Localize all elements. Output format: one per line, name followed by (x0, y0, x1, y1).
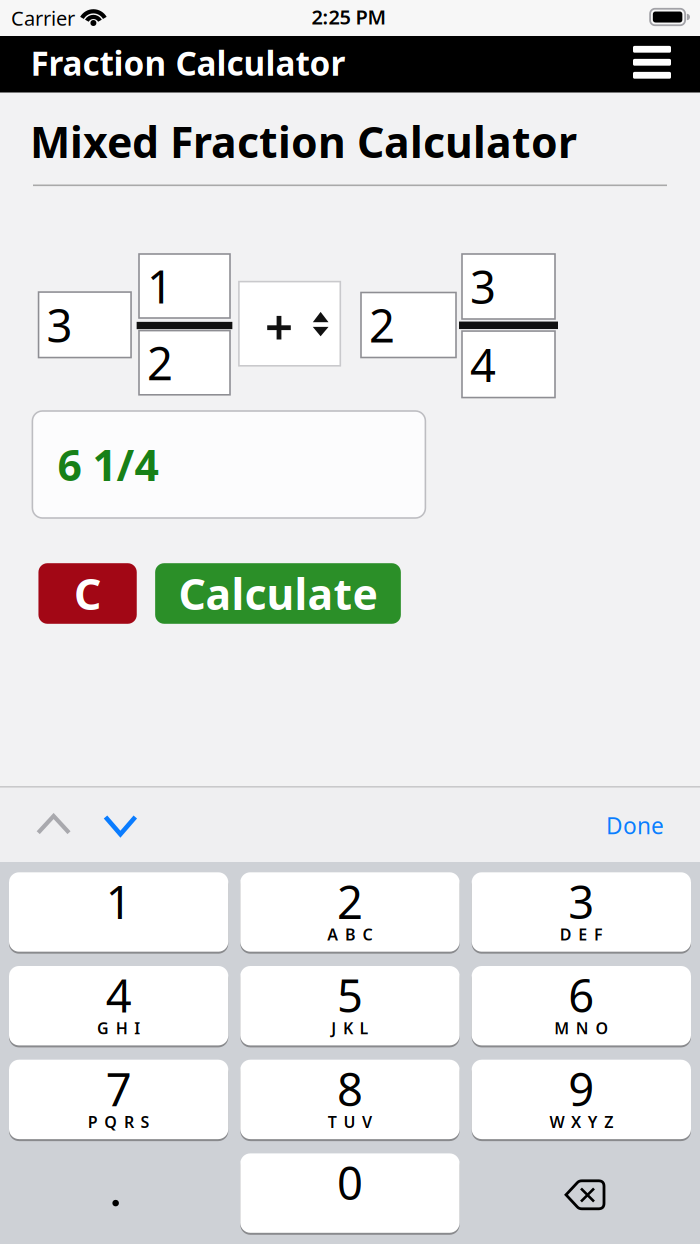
staticText: C (74, 565, 101, 622)
staticText: 5 (337, 965, 363, 1025)
staticText: 1 (147, 256, 173, 316)
button[interactable]: 4 (9, 966, 228, 1045)
staticText: M N O (554, 1017, 608, 1039)
staticText: 6 (568, 965, 594, 1025)
staticText: 4 (106, 965, 132, 1025)
button[interactable]: 3 (38, 292, 131, 358)
button[interactable]: Done (606, 810, 664, 840)
staticText: P Q R S (88, 1111, 150, 1132)
staticText: T U V (328, 1111, 372, 1132)
staticText: Mixed Fraction Calculator (30, 113, 577, 170)
button[interactable]: 5 (240, 966, 460, 1045)
staticText: 3 (46, 295, 72, 355)
button[interactable]: 3 (462, 254, 555, 319)
button[interactable] (103, 814, 138, 836)
button[interactable]: 4 (462, 331, 555, 398)
staticText: Carrier (11, 5, 75, 31)
button[interactable]: 6 (472, 966, 691, 1045)
staticText: 6 1/4 (57, 436, 158, 493)
button[interactable]: 3 (472, 872, 691, 952)
button[interactable]: 9 (472, 1060, 691, 1139)
button[interactable]: 0 (240, 1153, 460, 1233)
button[interactable]: 2 (139, 331, 230, 395)
staticText: A B C (327, 924, 373, 945)
staticText: 7 (106, 1059, 132, 1119)
staticText: 2 (147, 333, 173, 393)
staticText: 0 (337, 1152, 363, 1212)
staticText: W X Y Z (549, 1111, 613, 1132)
button[interactable]: C (38, 563, 137, 624)
button[interactable]: 2 (361, 292, 456, 357)
staticText: Calculate (178, 565, 377, 622)
button[interactable] (239, 282, 340, 366)
staticText: J K L (331, 1017, 369, 1039)
staticText: Done (606, 810, 664, 840)
button[interactable] (9, 1153, 228, 1233)
button[interactable]: 7 (9, 1060, 228, 1139)
button[interactable]: 2 (240, 872, 460, 952)
staticText: 2 (369, 295, 395, 355)
staticText: 9 (568, 1059, 594, 1119)
button[interactable]: 8 (240, 1060, 460, 1139)
staticText: 3 (568, 871, 594, 931)
staticText: 2:25 PM (311, 3, 386, 30)
staticText: D E F (560, 924, 603, 945)
button[interactable] (36, 813, 72, 835)
staticText: 3 (470, 256, 496, 317)
button[interactable] (633, 46, 671, 79)
button[interactable]: Calculate (155, 563, 401, 624)
staticText: G H I (97, 1017, 140, 1039)
staticText: 2 (337, 871, 363, 931)
button[interactable]: 1 (139, 254, 230, 318)
staticText: 8 (337, 1059, 363, 1119)
button[interactable]: 1 (9, 872, 228, 952)
staticText: 4 (470, 334, 496, 394)
button[interactable] (472, 1153, 691, 1233)
staticText: Fraction Calculator (30, 41, 345, 85)
staticText: 1 (106, 871, 132, 931)
